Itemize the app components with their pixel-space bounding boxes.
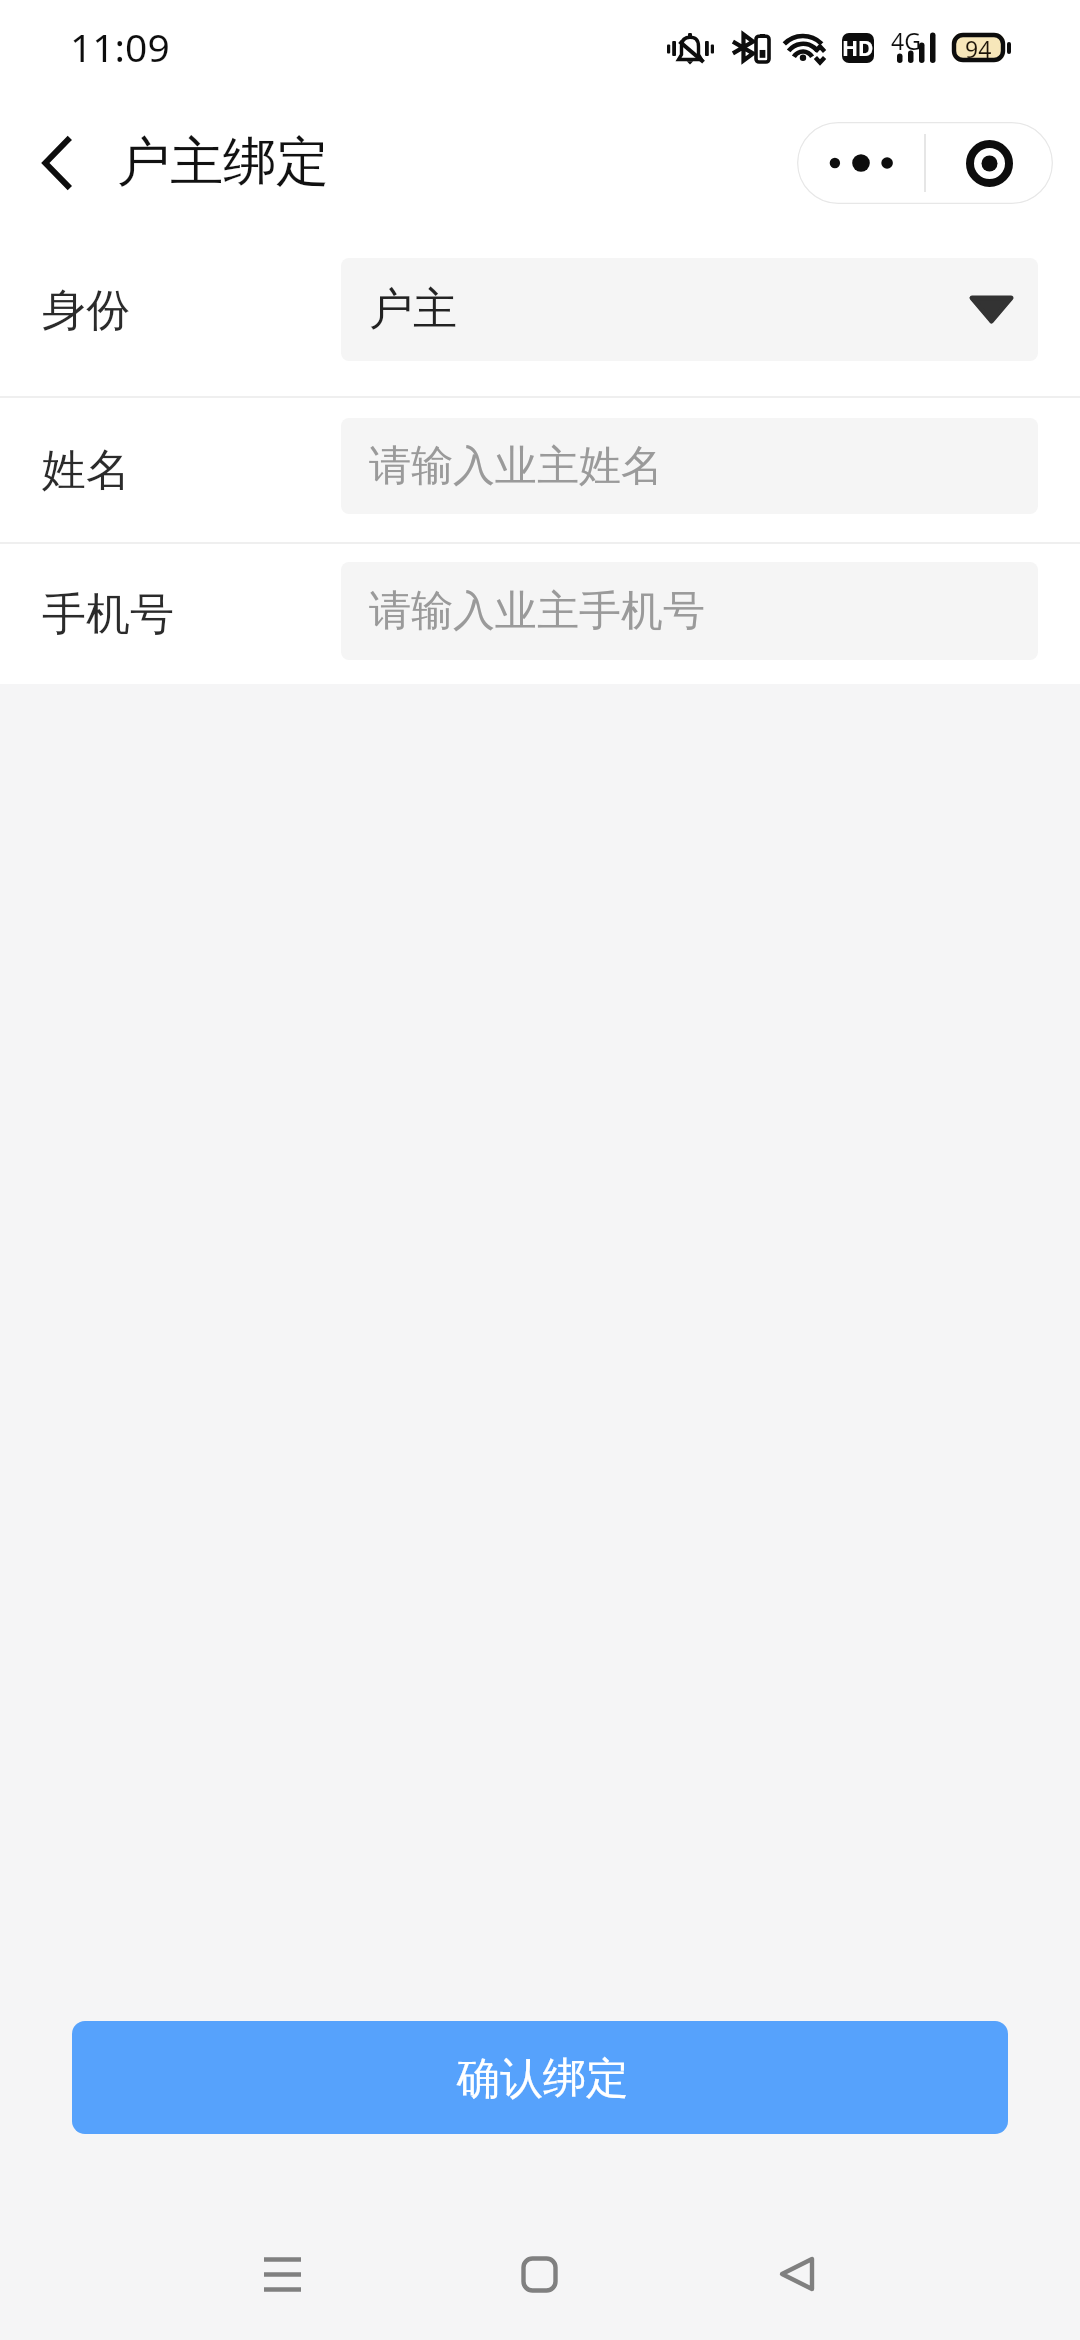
staticText: 户主 [369, 282, 457, 337]
button[interactable]: Home [494, 2229, 584, 2319]
button[interactable]: Back [0, 119, 345, 206]
staticText: 11:09 [70, 20, 170, 73]
other: Back [42, 138, 70, 188]
staticText: 身份 [42, 283, 130, 338]
button[interactable]: 身份 [0, 224, 1080, 396]
staticText: 姓名 [42, 443, 130, 498]
staticText: 请输入业主姓名 [369, 440, 663, 493]
staticText: 确认绑定 [457, 2052, 629, 2106]
staticText: 94 [965, 33, 992, 62]
button[interactable]: 手机号 [0, 544, 1080, 684]
staticText: 手机号 [42, 587, 174, 642]
staticText: 户主绑定 [117, 129, 329, 196]
button[interactable]: Back [752, 2229, 842, 2319]
button[interactable]: 姓名 [0, 398, 1080, 542]
button[interactable]: Close [926, 122, 1053, 204]
button[interactable]: Recents [237, 2229, 327, 2319]
button[interactable]: 确认绑定 [72, 2021, 1008, 2134]
button[interactable]: More [797, 122, 924, 204]
staticText: 4G [891, 25, 921, 56]
staticText: HD [842, 34, 874, 63]
staticText: 请输入业主手机号 [369, 585, 705, 638]
